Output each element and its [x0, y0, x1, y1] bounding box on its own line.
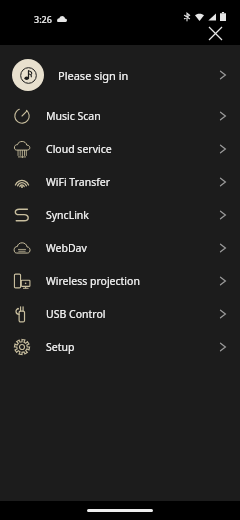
staticText: WiFi Transfer: [46, 175, 218, 189]
button[interactable]: Wireless projection: [0, 264, 240, 297]
button[interactable]: Cloud service: [0, 132, 240, 165]
staticText: Setup: [46, 340, 218, 354]
staticText: SyncLink: [46, 208, 218, 222]
button[interactable]: WiFi Transfer: [0, 165, 240, 198]
staticText: 3:26: [34, 13, 52, 25]
button[interactable]: Music Scan: [0, 99, 240, 132]
button[interactable]: USB Control: [0, 297, 240, 330]
button[interactable]: Close: [202, 22, 228, 45]
staticText: Please sign in: [58, 68, 218, 83]
staticText: Wireless projection: [46, 274, 218, 288]
button[interactable]: WebDav: [0, 231, 240, 264]
staticText: Cloud service: [46, 142, 218, 156]
staticText: Music Scan: [46, 109, 218, 123]
staticText: WebDav: [46, 241, 218, 255]
button[interactable]: Please sign in: [0, 51, 240, 99]
staticText: USB Control: [46, 307, 218, 321]
button[interactable]: Home gesture: [87, 509, 153, 512]
button[interactable]: Setup: [0, 330, 240, 363]
button[interactable]: SyncLink: [0, 198, 240, 231]
